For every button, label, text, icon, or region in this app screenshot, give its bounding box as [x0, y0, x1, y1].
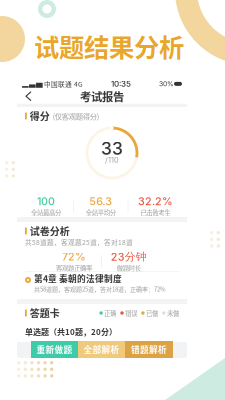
button[interactable]: 错题解析 — [125, 341, 173, 358]
staticText: 错题解析 — [131, 343, 167, 356]
button[interactable]: 第4章 秦朝的法律制度 — [17, 273, 187, 299]
staticText: 答题卡 — [30, 306, 60, 320]
button[interactable]: 全部解析 — [78, 341, 125, 358]
staticText: 考试报告 — [80, 88, 124, 104]
staticText: 56.3 — [89, 195, 112, 208]
staticText: 第4章 秦朝的法律制度 — [34, 272, 122, 285]
staticText: 单选题（共10题，20分） — [25, 326, 117, 337]
staticText: ▂▄▆ 中国联通 4G — [22, 79, 83, 89]
staticText: 100 — [37, 195, 55, 208]
staticText: 10:35 — [111, 79, 131, 89]
button[interactable]: 重新做题 — [31, 341, 78, 358]
staticText: 试题结果分析 — [34, 28, 184, 64]
staticText: 23分钟 — [111, 250, 147, 263]
staticText: (仅客观题得分) — [53, 111, 99, 121]
staticText: 72% — [62, 250, 86, 263]
staticText: 已击败考生 — [140, 208, 170, 217]
staticText: 全部解析 — [83, 343, 119, 356]
staticText: 重新做题 — [36, 343, 72, 356]
staticText: /110 — [105, 156, 119, 164]
staticText: 全站最高分 — [31, 208, 61, 217]
staticText: 试卷分析 — [30, 224, 70, 238]
staticText: 30% — [159, 80, 174, 88]
staticText: 得分 — [30, 109, 50, 123]
staticText: 32.2% — [138, 195, 173, 208]
button[interactable]: Back — [22, 90, 36, 103]
staticText: 33 — [101, 138, 123, 159]
staticText: 已做 — [146, 308, 158, 318]
staticText: 共58道题，客观题25道，答对18道 — [25, 237, 133, 247]
staticText: 全站平均分 — [86, 208, 116, 217]
staticText: 做题时长 — [117, 263, 141, 273]
staticText: 未做 — [167, 308, 179, 318]
staticText: 错误 — [125, 308, 137, 318]
staticText: 客观题正确率 — [56, 263, 92, 272]
staticText: 共58道题，客观题25道，答对18道，正确率：72% — [34, 285, 166, 293]
staticText: 正确 — [104, 308, 116, 318]
